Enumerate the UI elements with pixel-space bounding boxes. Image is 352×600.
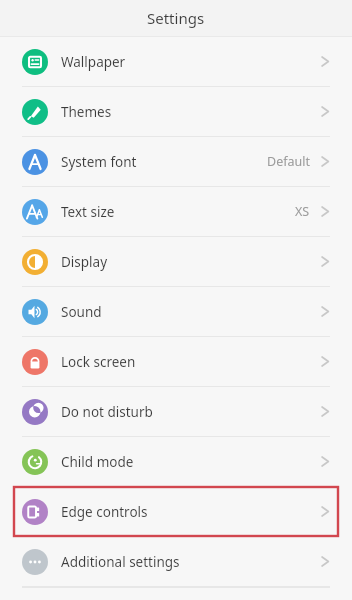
- staticText: Sound: [61, 303, 102, 321]
- staticText: Default: [267, 153, 310, 170]
- button[interactable]: Themes: [0, 87, 352, 136]
- button[interactable]: Lock screen: [0, 337, 352, 386]
- staticText: Settings: [147, 8, 205, 28]
- staticText: Text size: [61, 203, 115, 221]
- staticText: Do not disturb: [61, 403, 153, 421]
- staticText: Lock screen: [61, 353, 136, 371]
- staticText: Child mode: [61, 453, 134, 471]
- staticText: System font: [61, 153, 137, 171]
- button[interactable]: System font: [0, 137, 352, 186]
- staticText: Themes: [61, 103, 112, 121]
- staticText: Edge controls: [61, 503, 148, 521]
- button[interactable]: Display: [0, 237, 352, 286]
- staticText: Display: [61, 253, 108, 271]
- button[interactable]: Wallpaper: [0, 37, 352, 86]
- button[interactable]: Sound: [0, 287, 352, 336]
- button[interactable]: Additional settings: [0, 537, 352, 586]
- button[interactable]: Do not disturb: [0, 387, 352, 436]
- staticText: Additional settings: [61, 553, 180, 571]
- button[interactable]: Text size: [0, 187, 352, 236]
- staticText: Wallpaper: [61, 53, 126, 71]
- button[interactable]: Child mode: [0, 437, 352, 486]
- button[interactable]: Edge controls: [0, 487, 352, 536]
- staticText: XS: [295, 203, 310, 220]
